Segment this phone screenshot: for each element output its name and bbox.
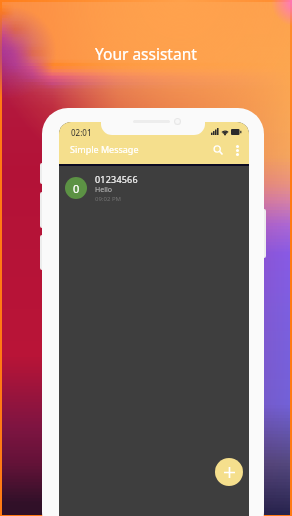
staticText: 0	[73, 181, 80, 196]
staticText: 02:01	[71, 127, 92, 138]
button[interactable]: More options	[228, 141, 246, 159]
staticText: Simple Message	[70, 143, 139, 155]
staticText: 01234566	[95, 173, 138, 185]
button[interactable]: New message	[215, 458, 243, 486]
button[interactable]: 0	[59, 166, 249, 210]
staticText: 09:02 PM	[95, 195, 121, 203]
button[interactable]: Search	[208, 140, 228, 160]
staticText: Hello	[95, 185, 112, 195]
staticText: Your assistant	[95, 43, 197, 64]
